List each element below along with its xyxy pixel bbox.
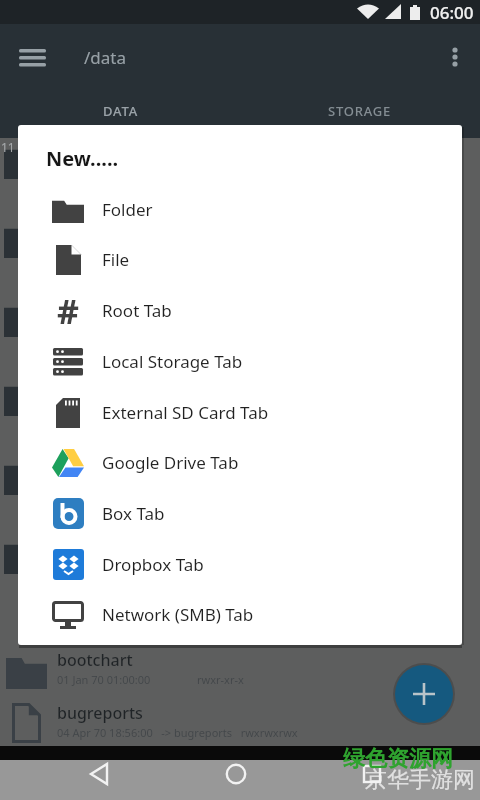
button[interactable]: External SD Card Tab	[18, 387, 462, 438]
button[interactable]: #	[18, 285, 462, 336]
staticText: Local Storage Tab	[102, 350, 243, 373]
staticText: Root Tab	[102, 299, 172, 322]
staticText: bootchart	[57, 649, 133, 671]
staticText: #	[57, 288, 79, 334]
staticText: 04 Apr 70 18:56:00 -> bugreports rwxrwxr…	[57, 725, 298, 740]
button[interactable]: bugreports	[0, 698, 480, 751]
button[interactable]: Dropbox Tab	[18, 539, 462, 590]
staticText: /data	[84, 46, 126, 69]
staticText: 06:00	[430, 1, 474, 24]
staticText: 京华手游网	[365, 766, 475, 794]
button[interactable]	[216, 758, 256, 798]
button[interactable]	[18, 42, 48, 72]
staticText: Dropbox Tab	[102, 553, 204, 576]
staticText: 11	[1, 139, 15, 155]
button[interactable]: Local Storage Tab	[18, 336, 462, 387]
button[interactable]	[444, 46, 466, 68]
button[interactable]: STORAGE	[240, 90, 480, 125]
staticText: File	[102, 248, 130, 271]
button[interactable]	[395, 665, 453, 723]
staticText: 绿色资源网	[343, 745, 453, 773]
staticText: New.....	[46, 145, 119, 172]
staticText: bugreports	[57, 702, 143, 724]
button[interactable]: Network (SMB) Tab	[18, 589, 462, 640]
button[interactable]: File	[18, 234, 462, 285]
staticText: DATA	[103, 102, 138, 120]
staticText: External SD Card Tab	[102, 401, 269, 424]
staticText: Folder	[102, 198, 153, 221]
button[interactable]	[81, 758, 121, 798]
staticText: Box Tab	[102, 502, 165, 525]
button[interactable]: bootchart	[0, 645, 480, 698]
button[interactable]: Google Drive Tab	[18, 437, 462, 488]
staticText: 01 Jan 70 01:00:00	[57, 672, 151, 687]
staticText: Google Drive Tab	[102, 451, 239, 474]
button[interactable]: Folder	[18, 184, 462, 235]
button[interactable]: Box Tab	[18, 488, 462, 539]
button[interactable]: DATA	[0, 90, 240, 125]
staticText: Network (SMB) Tab	[102, 603, 254, 626]
staticText: STORAGE	[328, 102, 392, 120]
button[interactable]	[352, 758, 392, 798]
staticText: rwxr-xr-x	[197, 672, 244, 687]
